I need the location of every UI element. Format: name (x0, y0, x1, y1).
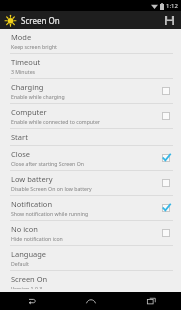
button[interactable]: Screen On (0, 271, 181, 292)
button[interactable]: Save (161, 12, 177, 28)
staticText: Enable while connected to computer (11, 118, 101, 125)
staticText: Mode (11, 32, 32, 42)
staticText: Show notification while running (11, 210, 89, 217)
button[interactable]: Language (0, 246, 181, 270)
button[interactable]: Start (0, 129, 181, 145)
staticText: Disable Screen On on low battery (11, 185, 92, 192)
staticText: Notification (11, 199, 53, 209)
button[interactable]: No icon (0, 221, 181, 245)
staticText: 3 Minutes (11, 68, 36, 75)
staticText: 1:12 (166, 2, 178, 10)
button[interactable]: Close (0, 146, 181, 170)
button[interactable]: Home (61, 292, 121, 310)
button[interactable]: Notification (0, 196, 181, 220)
staticText: Screen On (11, 274, 48, 284)
staticText: Computer (11, 107, 47, 117)
staticText: Timeout (11, 57, 41, 67)
staticText: Low battery (11, 174, 53, 184)
staticText: Hide notification icon (11, 235, 63, 242)
staticText: Charging (11, 82, 44, 92)
button[interactable]: Timeout (0, 54, 181, 78)
button[interactable]: Recent apps (121, 292, 181, 310)
button[interactable]: Charging (0, 79, 181, 103)
staticText: Enable while charging (11, 93, 65, 100)
button[interactable]: Computer (0, 104, 181, 128)
staticText: Keep screen bright (11, 43, 57, 50)
staticText: No icon (11, 224, 38, 234)
staticText: Version 1.0.3 (11, 285, 43, 289)
staticText: Default (11, 260, 29, 267)
other: App icon (4, 14, 17, 27)
button[interactable]: Mode (0, 29, 181, 53)
staticText: Language (11, 249, 47, 259)
button[interactable]: Back (0, 292, 61, 310)
button[interactable]: Low battery (0, 171, 181, 195)
staticText: Start (11, 132, 28, 142)
staticText: Close after starting Screen On (11, 160, 84, 167)
staticText: Screen On (21, 15, 60, 26)
staticText: Close (11, 149, 31, 159)
